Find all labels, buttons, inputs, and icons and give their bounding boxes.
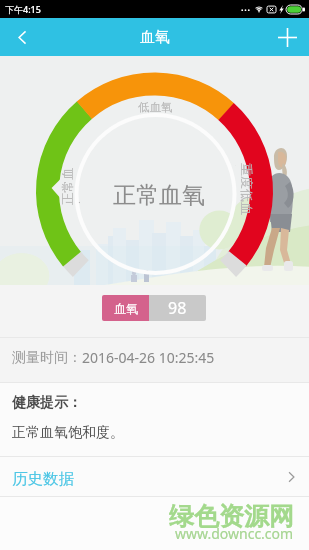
staticText: 血氧 [114,301,138,316]
button[interactable]: 历史数据 [0,457,309,496]
staticText: 低血氧 [138,100,173,114]
staticText: 正常血氧 [113,181,205,210]
staticText: www.downcc.com [175,524,294,543]
button[interactable]: Back [0,18,44,56]
button[interactable]: Add [265,18,309,56]
staticText: 下午4:15 [5,3,41,15]
button[interactable]: 血氧 [102,295,206,321]
staticText: 健康提示： [12,394,82,412]
staticText: 正常血氧 [60,165,80,205]
staticText: 血氧 [140,28,170,47]
staticText: 历史数据 [12,469,74,489]
staticText: 98 [168,297,187,319]
staticText: 正常血氧饱和度。 [12,424,124,442]
staticText: 测量时间： [12,349,82,367]
staticText: 2016-04-26 10:25:45 [82,348,215,367]
staticText: 绿色资源网 [169,501,294,532]
staticText: 重度低血氧 [235,163,255,215]
